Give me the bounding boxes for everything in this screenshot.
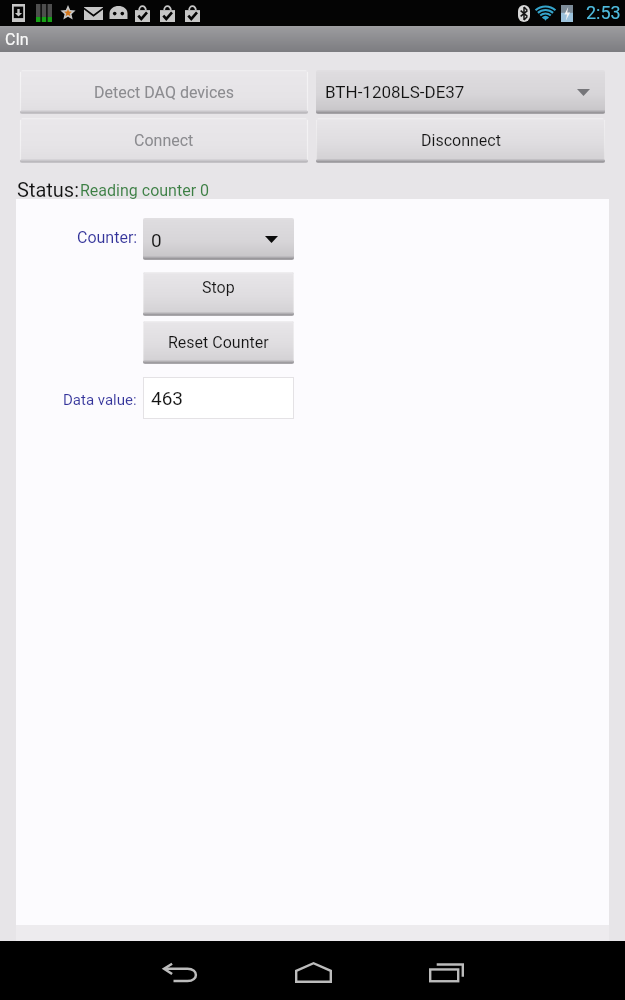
staticText: Disconnect <box>421 131 501 150</box>
staticText: Status: <box>17 178 80 200</box>
button[interactable]: Stop <box>143 272 294 316</box>
staticText: Counter: <box>77 228 138 247</box>
button[interactable]: Reset Counter <box>143 321 294 364</box>
staticText: Data value: <box>63 391 137 409</box>
button[interactable]: Home <box>281 941 345 1000</box>
button[interactable]: Recent apps <box>414 941 478 1000</box>
button[interactable]: 463 <box>143 377 294 419</box>
staticText: 463 <box>151 387 184 409</box>
button[interactable]: 0 <box>143 218 294 260</box>
button[interactable]: BTH-1208LS-DE37 <box>316 70 605 114</box>
staticText: Reset Counter <box>168 333 269 352</box>
staticText: BTH-1208LS-DE37 <box>325 82 465 102</box>
staticText: CIn <box>5 30 29 49</box>
staticText: Stop <box>202 278 235 297</box>
staticText: 2:53 <box>586 2 621 23</box>
staticText: Connect <box>134 131 194 150</box>
button[interactable]: Connect <box>20 118 308 163</box>
staticText: Detect DAQ devices <box>94 83 235 102</box>
button[interactable]: Back <box>148 941 212 1000</box>
button[interactable]: Disconnect <box>316 118 605 163</box>
staticText: Reading counter 0 <box>80 181 210 200</box>
staticText: 0 <box>151 229 162 251</box>
button[interactable]: Detect DAQ devices <box>20 70 308 114</box>
